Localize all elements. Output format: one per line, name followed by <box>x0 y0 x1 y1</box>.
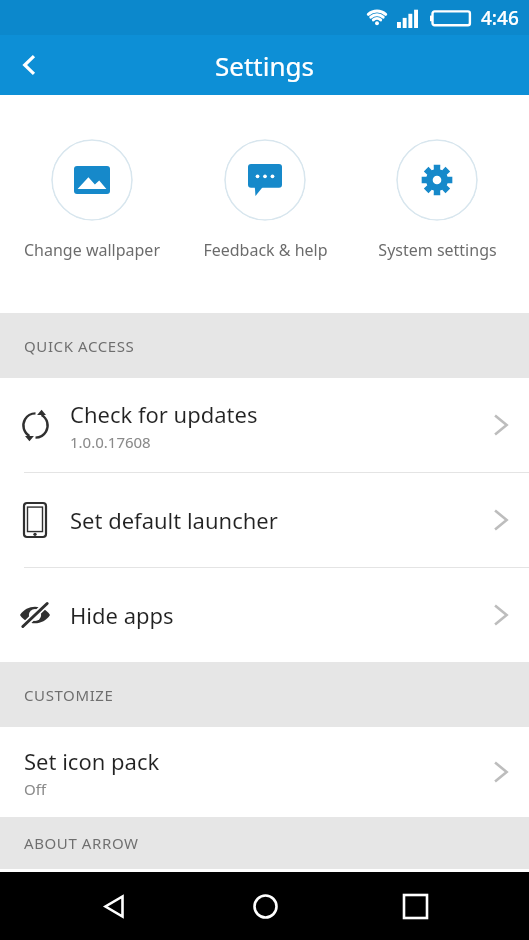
staticText: Set default launcher <box>70 505 278 535</box>
staticText: Feedback & help <box>203 239 328 261</box>
staticText: QUICK ACCESS <box>24 336 135 356</box>
button[interactable]: Set icon pack <box>0 727 529 817</box>
button[interactable]: System settings <box>357 95 517 313</box>
button[interactable]: Set default launcher <box>0 473 529 567</box>
staticText: ABOUT ARROW <box>24 833 139 853</box>
button[interactable]: Change wallpaper <box>12 95 172 313</box>
staticText: Change wallpaper <box>24 239 160 261</box>
staticText: Set icon pack <box>24 746 160 776</box>
button[interactable]: Back <box>6 41 54 89</box>
button[interactable]: Recent apps <box>379 872 451 940</box>
staticText: CUSTOMIZE <box>24 685 114 705</box>
staticText: Hide apps <box>70 600 174 630</box>
staticText: System settings <box>378 239 497 261</box>
staticText: 4:46 <box>481 5 519 31</box>
button[interactable]: Back <box>78 872 150 940</box>
staticText: 1.0.0.17608 <box>70 432 151 452</box>
staticText: Settings <box>215 48 314 83</box>
staticText: Off <box>24 779 47 799</box>
button[interactable]: Home <box>229 872 301 940</box>
button[interactable]: Check for updates <box>0 378 529 472</box>
button[interactable]: Hide apps <box>0 568 529 662</box>
button[interactable]: Feedback & help <box>185 95 345 313</box>
staticText: Check for updates <box>70 399 258 429</box>
